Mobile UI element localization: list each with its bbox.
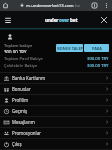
button[interactable]: Promosyonlar bbox=[0, 128, 112, 138]
staticText: Promosyonlar bbox=[12, 130, 41, 136]
button[interactable]: More options bbox=[101, 0, 112, 10]
staticText: 300.00 TRY bbox=[87, 56, 109, 61]
staticText: under bbox=[45, 17, 59, 23]
button[interactable]: Banka Kartlarım bbox=[0, 73, 112, 83]
button[interactable]: Tabs bbox=[89, 0, 100, 10]
staticText: Çıkış bbox=[12, 141, 22, 147]
button[interactable]: PARA bbox=[84, 44, 109, 52]
button[interactable]: BONUS TALEP bbox=[56, 44, 83, 52]
staticText: Mesajlarım bbox=[12, 119, 35, 125]
staticText: Toplam bakiye bbox=[4, 43, 33, 49]
button[interactable]: Çıkış bbox=[0, 139, 112, 149]
staticText: over bbox=[59, 17, 70, 23]
staticText: BONUS TALEP bbox=[57, 46, 83, 51]
button[interactable]: Home bbox=[0, 0, 10, 10]
staticText: PARA bbox=[92, 46, 102, 51]
button[interactable]: Bonuslar bbox=[0, 84, 112, 94]
staticText: be bbox=[75, 2, 81, 8]
staticText: Çekilebilir Bakiye bbox=[4, 63, 38, 68]
button[interactable]: Mesajlarım bbox=[0, 117, 112, 127]
staticText: 300.00 TRY bbox=[4, 49, 27, 53]
button[interactable]: Profilim bbox=[0, 95, 112, 105]
staticText: m.underoverbet13.com bbox=[26, 2, 74, 8]
button[interactable]: Profile bbox=[7, 34, 13, 40]
staticText: Banka Kartlarım bbox=[12, 75, 46, 81]
staticText: Bonuslar bbox=[12, 86, 31, 92]
staticText: Profilim bbox=[12, 97, 29, 103]
button[interactable]: Open menu bbox=[0, 12, 16, 28]
staticText: bet bbox=[70, 17, 78, 23]
staticText: 300.00 TRY bbox=[87, 63, 109, 68]
button[interactable]: Geçmiş bbox=[0, 106, 112, 116]
staticText: Toplam Pasif Bakiye bbox=[4, 56, 43, 61]
staticText: Geçmiş bbox=[12, 108, 28, 114]
button[interactable]: Close bbox=[96, 12, 112, 28]
